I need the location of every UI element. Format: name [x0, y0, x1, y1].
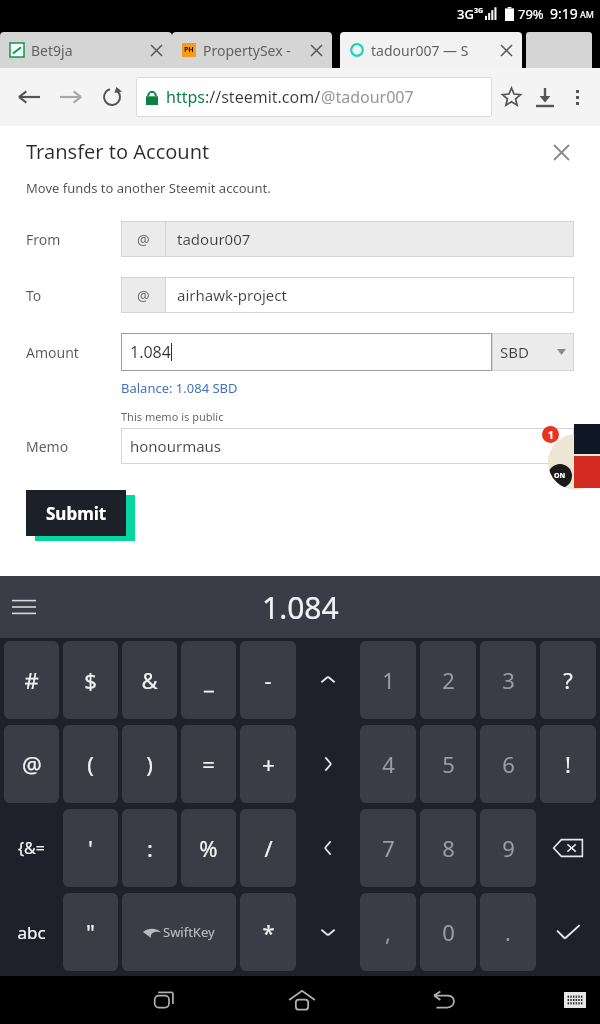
button[interactable]: 9 [480, 809, 536, 887]
button[interactable]: @ [121, 221, 574, 257]
staticText: 3 [502, 665, 515, 695]
button[interactable]: ( [63, 725, 118, 803]
button[interactable]: ! [540, 725, 596, 803]
button[interactable]: Balance: 1.084 SBD [121, 379, 238, 397]
button[interactable]: ' [63, 809, 118, 887]
staticText: 3G [474, 6, 484, 16]
staticText: / [264, 833, 273, 863]
staticText: https [166, 86, 205, 108]
button[interactable]: Keyboard menu [0, 583, 48, 631]
staticText: abc [17, 921, 46, 944]
staticText: , [385, 917, 391, 947]
button[interactable]: & [122, 641, 177, 719]
button[interactable]: " [63, 893, 118, 971]
button[interactable]: Backspace [540, 809, 596, 887]
button[interactable]: https [136, 77, 492, 117]
staticText: ON [554, 471, 566, 481]
button[interactable]: * [240, 893, 296, 971]
staticText: ' [88, 833, 93, 863]
staticText: ? [563, 665, 573, 695]
staticText: 79% [518, 5, 544, 23]
button[interactable]: SwiftKey [122, 893, 236, 971]
staticText: Submit [46, 502, 107, 525]
button[interactable]: Close tab [496, 40, 516, 60]
button[interactable]: 2 [420, 641, 476, 719]
button[interactable]: Close tab [146, 40, 166, 60]
button[interactable]: Back [415, 976, 469, 1024]
button[interactable]: @ [121, 277, 574, 313]
staticText: 0 [442, 917, 455, 947]
staticText: @ [22, 749, 42, 779]
button[interactable]: Move cursor left [300, 809, 356, 887]
button[interactable]: Download [528, 80, 562, 114]
staticText: Memo [26, 437, 121, 456]
staticText: = [202, 749, 215, 779]
staticText: " [86, 917, 95, 947]
staticText: $ [84, 665, 97, 695]
button[interactable]: + [240, 725, 296, 803]
button[interactable]: @ [4, 725, 59, 803]
button[interactable]: 7 [360, 809, 416, 887]
button[interactable]: . [480, 893, 536, 971]
staticText: 5 [442, 749, 455, 779]
button[interactable]: Move cursor up [300, 641, 356, 719]
button[interactable]: ? [540, 641, 596, 719]
button[interactable]: Bet9ja [0, 32, 172, 68]
button[interactable]: 0 [420, 893, 476, 971]
button[interactable]: , [360, 893, 416, 971]
staticText: @tadour007 [321, 86, 414, 108]
button[interactable]: SBD [492, 333, 574, 371]
button[interactable]: Keyboard active [564, 992, 586, 1008]
button[interactable]: honourmaus [121, 428, 574, 464]
button[interactable]: Move cursor down [300, 893, 356, 971]
button[interactable]: % [181, 809, 236, 887]
staticText: {&= [18, 837, 45, 859]
button[interactable]: {&= [4, 809, 59, 887]
button[interactable]: $ [63, 641, 118, 719]
staticText: tadour007 — S [371, 41, 469, 60]
staticText: & [141, 665, 158, 695]
button[interactable]: Close tab [306, 40, 326, 60]
staticText: ! [565, 749, 571, 779]
button[interactable]: Close [548, 139, 574, 165]
button[interactable]: Forward [50, 76, 92, 118]
staticText: PropertySex - [203, 41, 291, 60]
button[interactable]: Home [275, 976, 329, 1024]
staticText: + [262, 749, 275, 779]
button[interactable]: 8 [420, 809, 476, 887]
button[interactable]: Recents [135, 976, 189, 1024]
button[interactable]: Back [8, 76, 50, 118]
button[interactable]: 3 [480, 641, 536, 719]
button[interactable]: Move cursor right [300, 725, 356, 803]
button[interactable]: Submit [26, 490, 126, 536]
button[interactable]: Floating widget [548, 434, 600, 490]
staticText: 4 [382, 749, 395, 779]
staticText: airhawk-project [177, 285, 287, 305]
button[interactable]: 4 [360, 725, 416, 803]
staticText: 6 [502, 749, 515, 779]
button[interactable]: Confirm [540, 893, 596, 971]
button[interactable]: - [240, 641, 296, 719]
button[interactable]: tadour007 — S [340, 32, 522, 68]
button[interactable]: Reload [92, 77, 132, 117]
staticText: # [24, 665, 39, 695]
button[interactable]: _ [181, 641, 236, 719]
button[interactable]: 1 [360, 641, 416, 719]
button[interactable]: Bookmark [494, 80, 528, 114]
button[interactable]: / [240, 809, 296, 887]
staticText: AM [580, 8, 594, 20]
staticText: 1 [382, 665, 395, 695]
button[interactable]: ) [122, 725, 177, 803]
button[interactable]: 6 [480, 725, 536, 803]
button[interactable]: 1.084 [121, 333, 492, 371]
button[interactable]: New tab [526, 32, 592, 68]
button[interactable]: PH [172, 32, 332, 68]
button[interactable]: : [122, 809, 177, 887]
staticText: ) [146, 749, 153, 779]
button[interactable]: = [181, 725, 236, 803]
button[interactable]: More options [562, 82, 592, 112]
button[interactable]: # [4, 641, 59, 719]
button[interactable]: 5 [420, 725, 476, 803]
button[interactable]: abc [4, 893, 59, 971]
staticText: 1.084 [130, 341, 171, 363]
